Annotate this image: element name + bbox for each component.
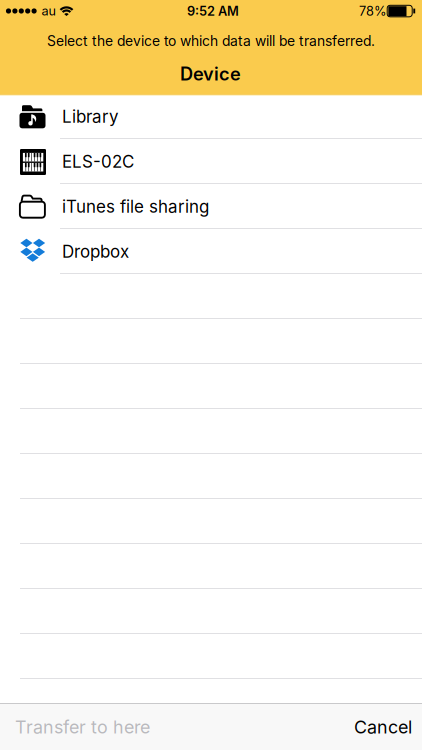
button[interactable]: iTunes file sharing bbox=[0, 184, 422, 229]
staticText: iTunes file sharing bbox=[62, 196, 209, 217]
staticText: Device bbox=[180, 63, 241, 85]
staticText: 9:52 AM bbox=[187, 3, 239, 19]
staticText: 78% bbox=[359, 3, 387, 19]
button[interactable]: Cancel bbox=[354, 704, 412, 750]
button[interactable]: ELS-02C bbox=[0, 139, 422, 184]
staticText: ELS-02C bbox=[62, 151, 134, 172]
staticText: Select the device to which data will be … bbox=[47, 33, 375, 49]
button[interactable]: Library bbox=[0, 94, 422, 139]
staticText: Dropbox bbox=[62, 241, 129, 262]
button[interactable]: Dropbox bbox=[0, 229, 422, 274]
staticText: au bbox=[41, 3, 55, 19]
staticText: Transfer to here bbox=[15, 716, 150, 738]
staticText: Cancel bbox=[354, 716, 412, 738]
button[interactable]: Transfer to here bbox=[15, 704, 150, 750]
staticText: Library bbox=[62, 106, 119, 127]
